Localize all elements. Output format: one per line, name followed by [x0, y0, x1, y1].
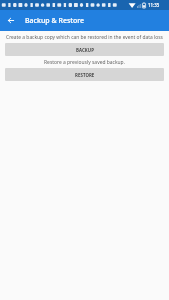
staticText: RESTORE	[75, 72, 95, 78]
staticText: Backup & Restore	[25, 16, 85, 26]
button[interactable]: BACKUP	[5, 43, 164, 56]
button[interactable]: Back	[0, 10, 21, 31]
staticText: Restore a previously saved backup.	[5, 59, 164, 66]
staticText: 11:35	[148, 2, 160, 8]
staticText: BACKUP	[76, 47, 94, 53]
staticText: Create a backup copy which can be restor…	[5, 34, 164, 41]
button[interactable]: RESTORE	[5, 68, 164, 81]
